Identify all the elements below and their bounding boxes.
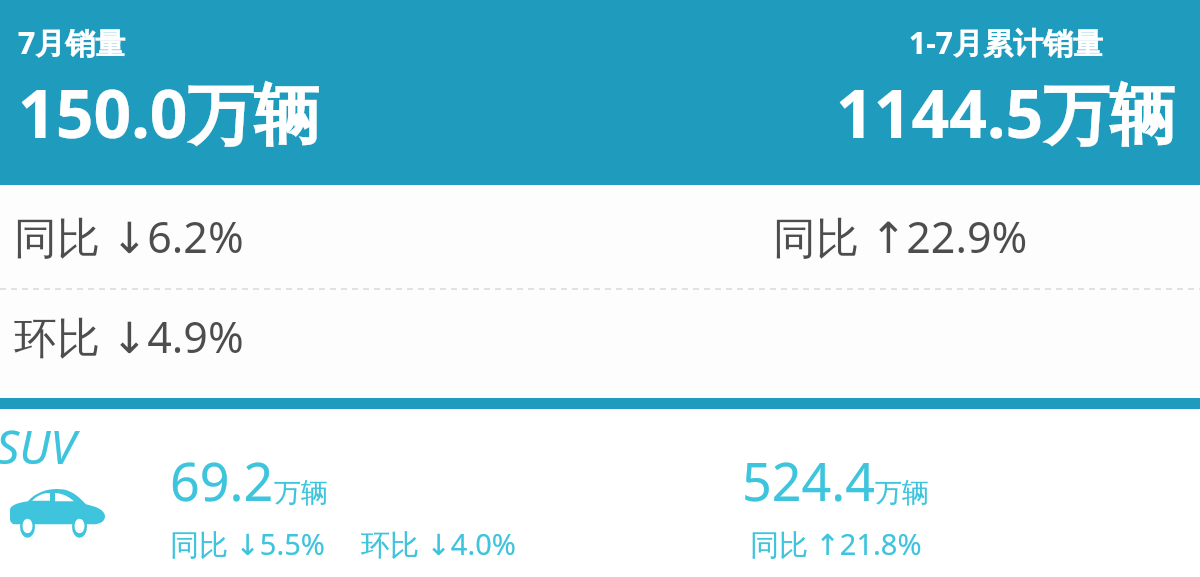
staticText: 万辆: [875, 476, 929, 510]
staticText: 万辆: [274, 476, 328, 510]
other: SUV vehicle icon: [6, 484, 106, 540]
button[interactable]: 69.2: [170, 445, 516, 564]
staticText: 150.0万辆: [18, 67, 320, 157]
staticText: 69.2: [170, 445, 274, 516]
button[interactable]: 同比 ↓6.2%: [0, 185, 600, 288]
staticText: 同比 ↑22.9%: [773, 207, 1028, 266]
staticText: 524.4: [742, 445, 875, 516]
staticText: 同比 ↓6.2%: [14, 207, 244, 266]
staticText: 1-7月累计销量: [909, 22, 1103, 63]
button[interactable]: SUV: [0, 415, 106, 540]
button[interactable]: 524.4: [742, 445, 929, 564]
button[interactable]: 环比 ↓4.9%: [0, 288, 600, 398]
staticText: 1144.5万辆: [836, 67, 1176, 157]
button[interactable]: 7月销量: [18, 22, 320, 157]
staticText: SUV: [0, 415, 76, 478]
staticText: 同比 ↓5.5%: [170, 524, 325, 564]
staticText: 7月销量: [18, 22, 126, 63]
staticText: 环比 ↓4.9%: [14, 307, 244, 366]
staticText: 环比 ↓4.0%: [361, 524, 516, 564]
button[interactable]: 1-7月累计销量: [836, 22, 1176, 157]
button[interactable]: 同比 ↑22.9%: [600, 185, 1200, 288]
staticText: 同比 ↑21.8%: [750, 524, 922, 564]
